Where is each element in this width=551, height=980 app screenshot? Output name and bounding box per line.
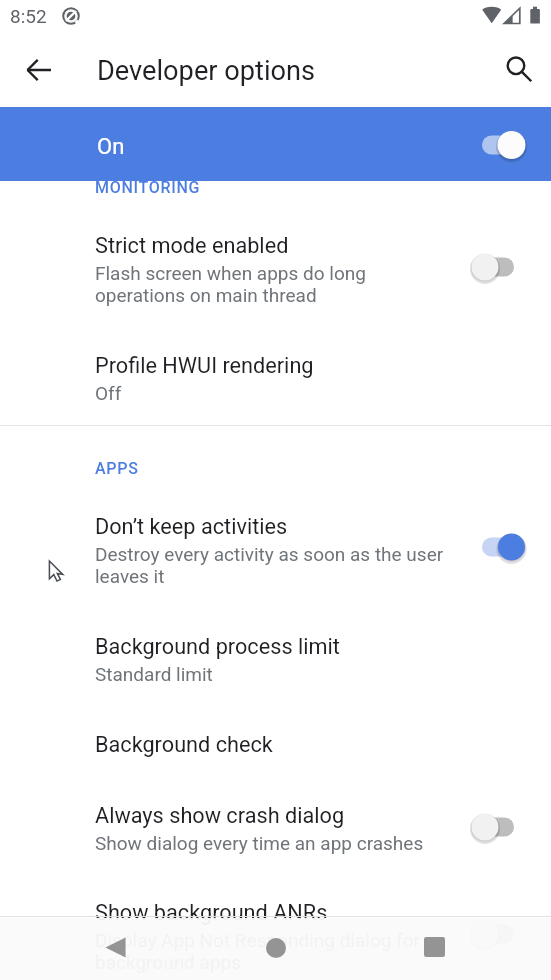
staticText: Background process limit bbox=[95, 634, 340, 659]
button[interactable]: Profile HWUI rendering bbox=[0, 340, 551, 437]
staticText: background apps bbox=[95, 951, 242, 973]
button[interactable]: Don’t keep activities bbox=[0, 501, 551, 620]
staticText: On bbox=[97, 134, 125, 160]
button[interactable]: Always show crash dialog bbox=[0, 790, 551, 887]
staticText: APPS bbox=[95, 459, 139, 478]
staticText: Strict mode enabled bbox=[95, 233, 289, 258]
button[interactable]: Navigate up bbox=[11, 42, 67, 98]
button[interactable]: Home bbox=[244, 917, 308, 979]
button[interactable]: Background process limit bbox=[0, 621, 551, 718]
staticText: Background check bbox=[95, 732, 273, 757]
staticText: Developer options bbox=[97, 55, 316, 87]
staticText: operations on main thread bbox=[95, 284, 317, 306]
staticText: Don’t keep activities bbox=[95, 514, 288, 539]
button[interactable]: Strict mode enabled bbox=[0, 220, 551, 339]
staticText: Always show crash dialog bbox=[95, 803, 345, 828]
staticText: Standard limit bbox=[95, 663, 213, 685]
button[interactable]: Back bbox=[83, 916, 147, 978]
staticText: Destroy every activity as soon as the us… bbox=[95, 543, 444, 565]
button[interactable]: Background check bbox=[0, 719, 551, 790]
staticText: Off bbox=[95, 382, 122, 404]
staticText: MONITORING bbox=[95, 178, 201, 197]
staticText: leaves it bbox=[95, 565, 165, 587]
staticText: Show background ANRs bbox=[95, 900, 328, 925]
button[interactable]: Recent apps bbox=[402, 916, 466, 978]
button[interactable]: On bbox=[0, 107, 551, 181]
staticText: Profile HWUI rendering bbox=[95, 353, 314, 378]
staticText: 8:52 bbox=[10, 5, 47, 27]
staticText: Flash screen when apps do long bbox=[95, 262, 366, 284]
button[interactable]: Show background ANRs bbox=[0, 887, 551, 980]
staticText: Display App Not Responding dialog for bbox=[95, 929, 421, 951]
button[interactable]: Search bbox=[492, 42, 548, 98]
staticText: Show dialog every time an app crashes bbox=[95, 832, 424, 854]
